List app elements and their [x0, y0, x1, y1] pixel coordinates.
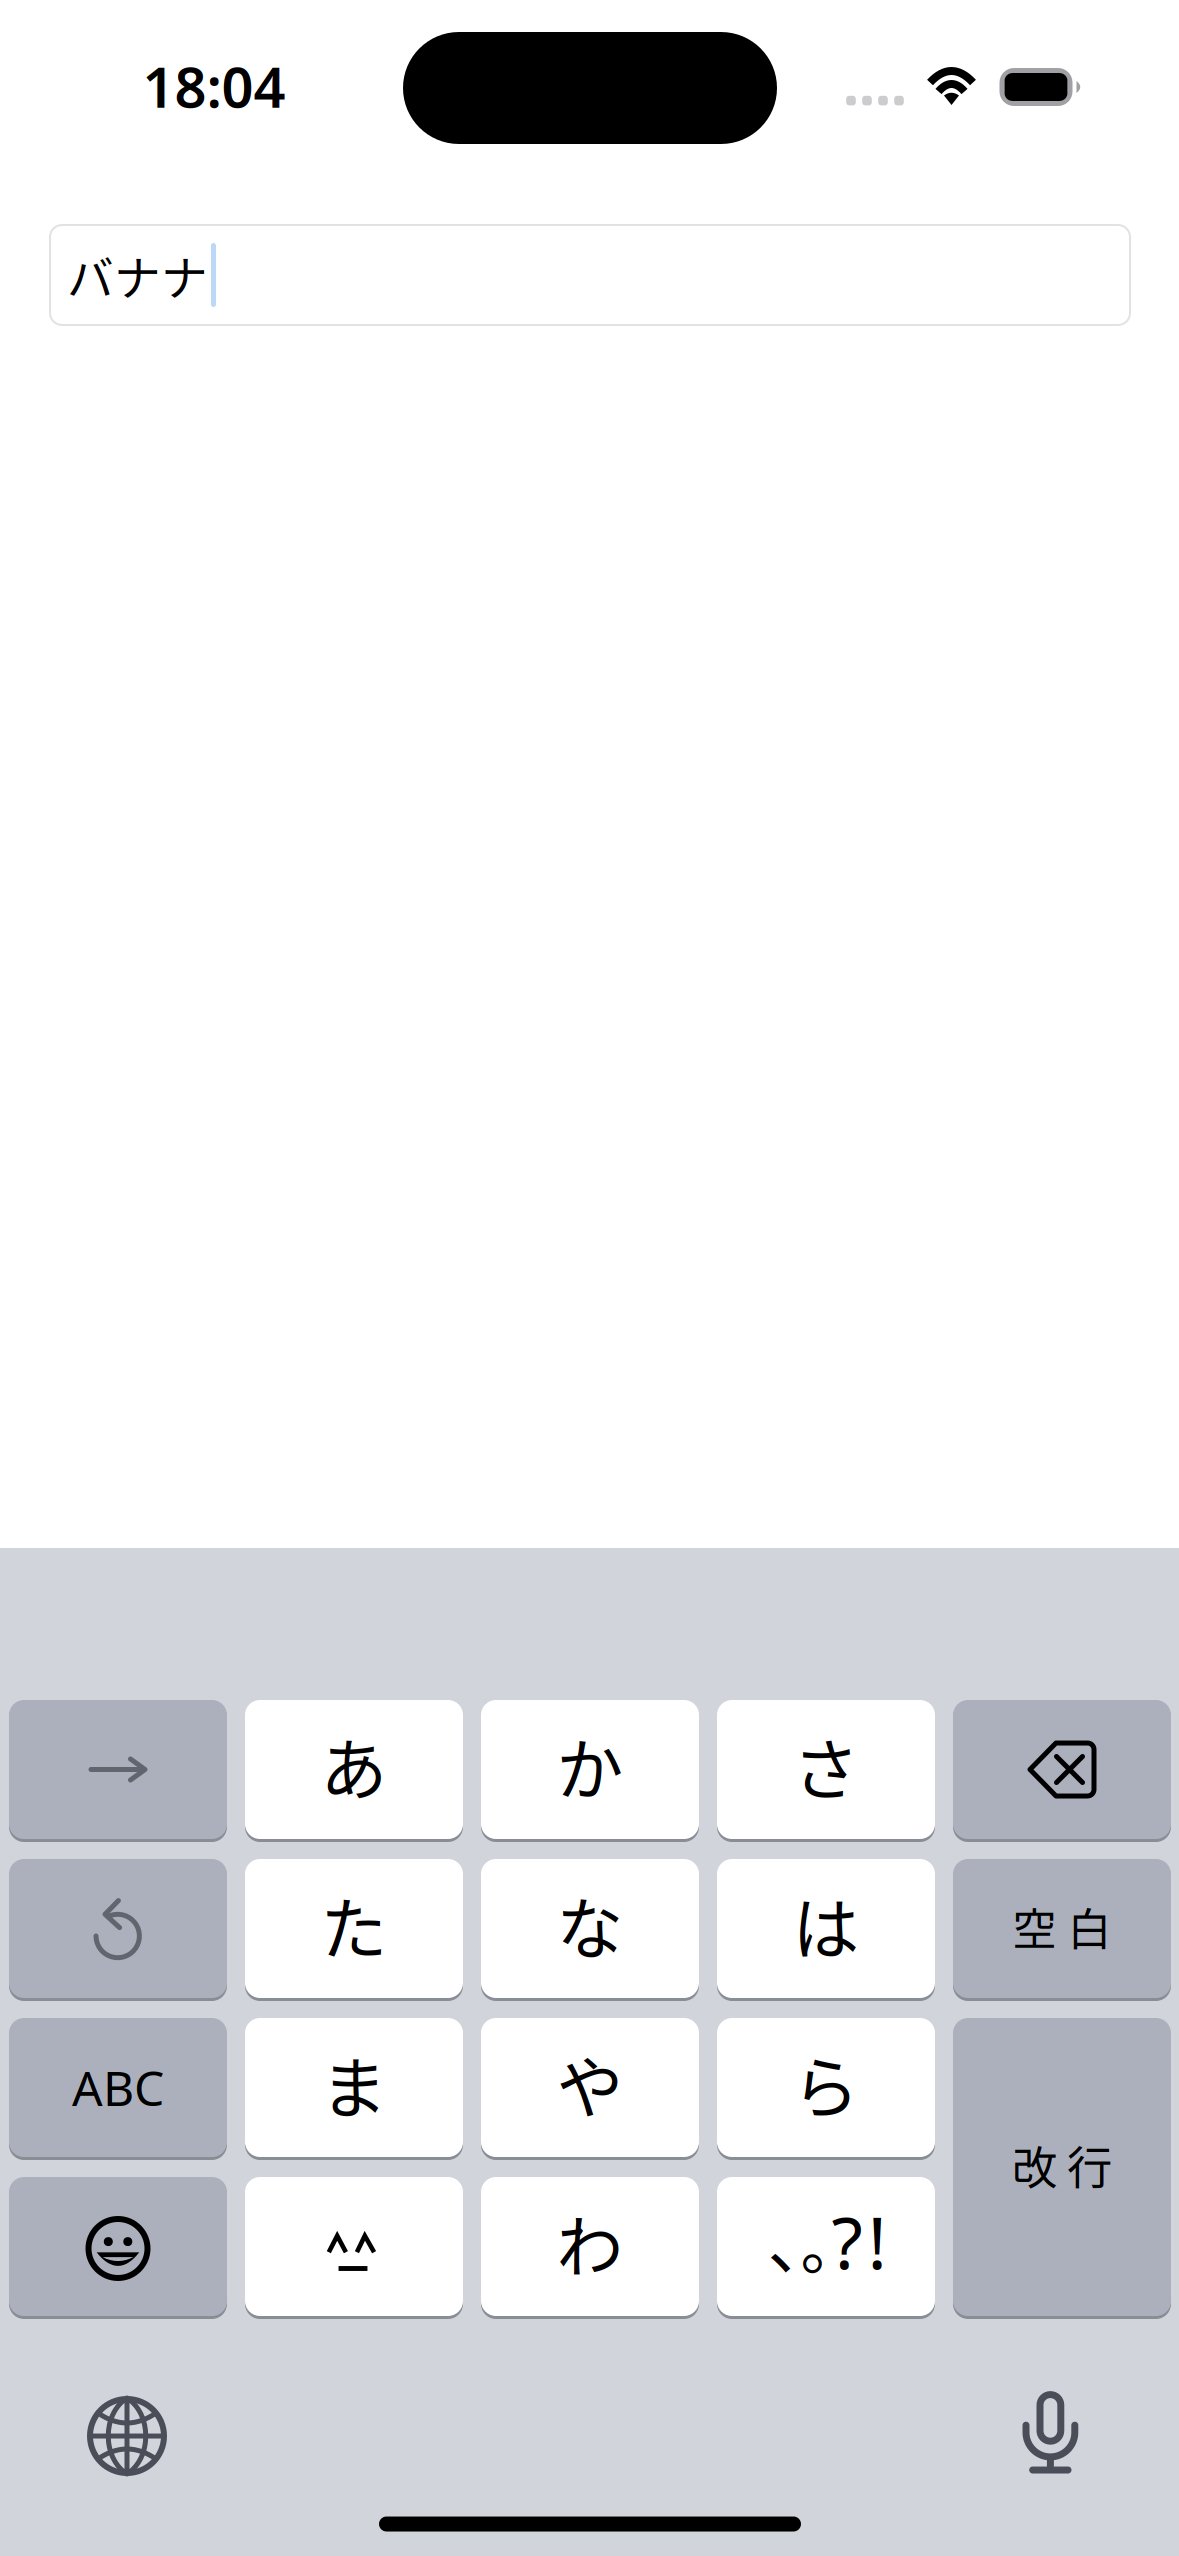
staticText: ま: [320, 2035, 387, 2132]
button[interactable]: ら: [717, 2018, 935, 2157]
staticText: バナナ: [67, 241, 208, 309]
button[interactable]: 空: [953, 1859, 1171, 1998]
staticText: 。: [800, 2198, 861, 2287]
staticText: 改: [1012, 2132, 1057, 2198]
button[interactable]: [245, 2177, 463, 2316]
button[interactable]: か: [481, 1700, 699, 1839]
button[interactable]: や: [481, 2018, 699, 2157]
staticText: は: [792, 1876, 859, 1973]
button[interactable]: [9, 1700, 227, 1839]
button[interactable]: [953, 1700, 1171, 1839]
staticText: ABC: [72, 2056, 164, 2119]
staticText: 、: [767, 2191, 834, 2288]
staticText: ?: [831, 2194, 862, 2289]
staticText: な: [556, 1876, 623, 1973]
staticText: 空: [1012, 1895, 1056, 1958]
staticText: 18:04: [142, 49, 285, 123]
staticText: あ: [320, 1717, 387, 1814]
button[interactable]: さ: [717, 1700, 935, 1839]
staticText: か: [556, 1717, 623, 1814]
staticText: わ: [556, 2194, 623, 2291]
button[interactable]: 、: [717, 2177, 935, 2316]
button[interactable]: [9, 1859, 227, 1998]
button[interactable]: [9, 2177, 227, 2316]
button[interactable]: あ: [245, 1700, 463, 1839]
staticText: た: [320, 1876, 387, 1973]
staticText: !: [867, 2194, 886, 2289]
staticText: や: [556, 2035, 623, 2132]
button[interactable]: は: [717, 1859, 935, 1998]
button[interactable]: ま: [245, 2018, 463, 2157]
button[interactable]: ABC: [9, 2018, 227, 2157]
staticText: ら: [792, 2035, 859, 2132]
button[interactable]: 改: [953, 2018, 1171, 2316]
button[interactable]: わ: [481, 2177, 699, 2316]
staticText: 行: [1067, 2132, 1112, 2198]
button[interactable]: た: [245, 1859, 463, 1998]
staticText: 白: [1067, 1895, 1111, 1958]
button[interactable]: な: [481, 1859, 699, 1998]
button[interactable]: Next keyboard: [87, 2396, 167, 2476]
button[interactable]: バナナ: [49, 224, 1131, 326]
button[interactable]: Dictation: [1022, 2390, 1078, 2473]
staticText: さ: [792, 1717, 859, 1814]
